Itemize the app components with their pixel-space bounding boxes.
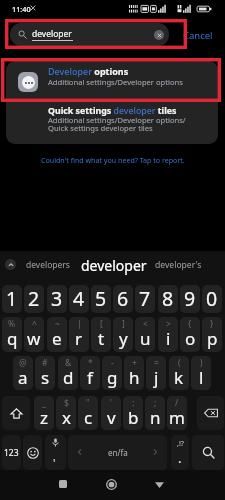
button[interactable]: ]: [113, 317, 133, 352]
button[interactable]: /: [167, 396, 187, 430]
staticText: 5: [95, 285, 107, 312]
staticText: z: [40, 406, 48, 429]
button[interactable]: ;: [145, 396, 165, 430]
staticText: a: [18, 366, 28, 389]
staticText: ': [110, 397, 112, 409]
staticText: Cancel: [183, 29, 213, 42]
staticText: developers: [26, 259, 70, 271]
button[interactable]: developer's: [152, 257, 204, 273]
button[interactable]: 9: [180, 285, 200, 313]
staticText: Developer options: [48, 65, 129, 77]
staticText: w: [27, 327, 41, 350]
button[interactable]: %: [2, 317, 22, 352]
staticText: developer: [81, 256, 147, 275]
button[interactable]: developer: [80, 254, 148, 276]
button[interactable]: Space: [68, 435, 167, 470]
staticText: *: [88, 357, 93, 369]
staticText: $: [64, 397, 69, 409]
button[interactable]: =: [146, 356, 166, 390]
staticText: 7: [139, 285, 151, 312]
button[interactable]: }: [202, 317, 222, 352]
staticText: x: [62, 406, 71, 429]
button[interactable]: *: [80, 356, 100, 390]
button[interactable]: 5: [91, 285, 111, 313]
button[interactable]: ): [191, 356, 211, 390]
staticText: f: [87, 366, 93, 389]
button[interactable]: 7: [135, 285, 155, 313]
button[interactable]: &: [58, 356, 78, 390]
button[interactable]: Search: [192, 435, 224, 470]
button[interactable]: Shift: [2, 396, 30, 430]
staticText: y: [119, 327, 128, 350]
button[interactable]: ~: [47, 317, 67, 352]
staticText: 4: [73, 285, 85, 312]
button[interactable]: Home: [93, 470, 130, 500]
button[interactable]: 1: [2, 285, 22, 313]
button[interactable]: Quick settings developer tiles: [6, 102, 218, 144]
button[interactable]: 6: [113, 285, 133, 313]
button[interactable]: Emoji: [23, 435, 42, 470]
button[interactable]: _: [34, 396, 54, 430]
button[interactable]: <: [135, 317, 155, 352]
staticText: =: [154, 357, 159, 369]
staticText: l: [199, 366, 204, 389]
staticText: }: [210, 318, 214, 330]
button[interactable]: >: [158, 317, 178, 352]
staticText: q: [7, 327, 18, 350]
button[interactable]: 0: [202, 285, 222, 313]
button[interactable]: More suggestions: [5, 259, 16, 270]
button[interactable]: developers: [22, 257, 74, 273]
staticText: i: [166, 327, 171, 350]
staticText: o: [185, 327, 196, 350]
staticText: (: [178, 357, 181, 369]
staticText: >: [166, 318, 171, 330]
button[interactable]: 3: [47, 285, 67, 313]
button[interactable]: 4: [69, 285, 89, 313]
button[interactable]: -: [102, 356, 122, 390]
button[interactable]: +: [124, 356, 144, 390]
button[interactable]: Cancel: [182, 29, 214, 42]
staticText: n: [150, 406, 161, 429]
staticText: k: [174, 366, 184, 389]
button[interactable]: 2: [24, 285, 44, 313]
staticText: Couldn't find what you need? Tap to repo…: [41, 155, 185, 165]
staticText: e: [52, 327, 62, 350]
button[interactable]: ": [78, 396, 98, 430]
staticText: h: [129, 366, 140, 389]
staticText: v: [107, 406, 116, 429]
button[interactable]: 123: [2, 435, 21, 470]
button[interactable]: [: [91, 317, 111, 352]
staticText: d: [63, 366, 74, 389]
button[interactable]: 8: [158, 285, 178, 313]
staticText: ': [53, 455, 56, 470]
button[interactable]: :: [123, 396, 143, 430]
button[interactable]: ^: [24, 317, 44, 352]
button[interactable]: Clear search: [154, 30, 164, 40]
staticText: ): [200, 357, 203, 369]
button[interactable]: Back: [141, 470, 178, 500]
button[interactable]: #: [35, 356, 55, 390]
staticText: +: [132, 357, 137, 369]
button[interactable]: Voice input: [45, 435, 66, 470]
staticText: developer: [32, 28, 72, 40]
staticText: c: [84, 406, 93, 429]
staticText: 3: [51, 285, 63, 312]
button[interactable]: @: [13, 356, 33, 390]
staticText: p: [207, 327, 218, 350]
button[interactable]: developer: [10, 23, 169, 46]
button[interactable]: $: [56, 396, 76, 430]
button[interactable]: Recents: [44, 470, 81, 500]
button[interactable]: Couldn't find what you need? Tap to repo…: [41, 155, 185, 165]
button[interactable]: |: [69, 317, 89, 352]
button[interactable]: {: [180, 317, 200, 352]
staticText: g: [107, 366, 118, 389]
button[interactable]: Backspace: [197, 396, 224, 430]
staticText: 11:40: [12, 4, 31, 14]
button[interactable]: ': [101, 396, 121, 430]
staticText: :: [132, 397, 135, 409]
button[interactable]: Developer options: [6, 61, 218, 102]
staticText: #: [42, 357, 48, 369]
button[interactable]: (: [169, 356, 189, 390]
staticText: ;: [154, 397, 157, 409]
button[interactable]: ,!?: [171, 435, 189, 470]
